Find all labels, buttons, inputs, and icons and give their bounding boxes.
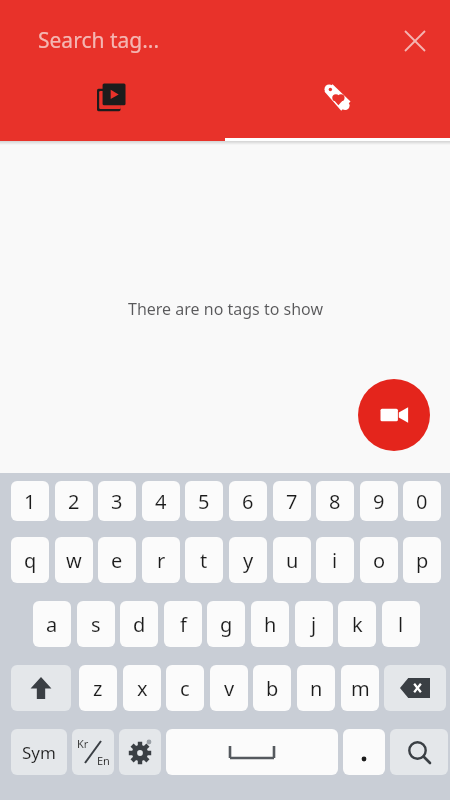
staticText: u [286, 547, 299, 574]
button[interactable]: k [338, 601, 376, 647]
button[interactable]: s [77, 601, 115, 647]
staticText: n [310, 675, 323, 702]
staticText: b [266, 675, 279, 702]
button[interactable]: 8 [316, 481, 354, 521]
button[interactable]: y [229, 537, 267, 583]
staticText: h [264, 611, 277, 638]
staticText: 0 [416, 488, 428, 515]
button[interactable]: z [79, 665, 117, 711]
button[interactable]: 1 [11, 481, 49, 521]
button[interactable]: f [164, 601, 202, 647]
button[interactable]: 7 [273, 481, 311, 521]
button[interactable]: a [33, 601, 71, 647]
button[interactable]: Backspace [384, 665, 446, 711]
button[interactable]: Videos tab [0, 66, 225, 141]
staticText: Sym [22, 741, 56, 764]
staticText: 6 [242, 488, 254, 515]
button[interactable]: g [207, 601, 245, 647]
button[interactable]: 3 [98, 481, 136, 521]
staticText: There are no tags to show [128, 298, 323, 320]
button[interactable]: o [360, 537, 398, 583]
button[interactable]: 2 [55, 481, 93, 521]
button[interactable]: q [11, 537, 49, 583]
button[interactable]: 9 [360, 481, 398, 521]
button[interactable]: Settings [119, 729, 161, 775]
staticText: l [398, 611, 404, 638]
staticText: 5 [198, 488, 210, 515]
staticText: 8 [329, 488, 341, 515]
staticText: 9 [373, 488, 385, 515]
staticText: x [137, 675, 148, 702]
staticText: y [243, 547, 254, 574]
staticText: t [200, 547, 208, 574]
staticText: a [46, 611, 58, 638]
button[interactable]: d [120, 601, 158, 647]
staticText: m [351, 675, 370, 702]
button[interactable]: Space [166, 729, 338, 775]
staticText: g [220, 611, 233, 638]
button[interactable]: b [253, 665, 291, 711]
staticText: i [332, 547, 338, 574]
button[interactable]: u [273, 537, 311, 583]
staticText: Kr [77, 736, 89, 751]
staticText: 3 [111, 488, 123, 515]
button[interactable]: n [297, 665, 335, 711]
staticText: v [224, 675, 235, 702]
staticText: q [24, 547, 37, 574]
button[interactable]: 4 [142, 481, 180, 521]
button[interactable]: 6 [229, 481, 267, 521]
button[interactable]: i [316, 537, 354, 583]
button[interactable]: Tags tab [225, 66, 450, 141]
staticText: 4 [155, 488, 167, 515]
button[interactable]: e [98, 537, 136, 583]
staticText: 7 [286, 488, 298, 515]
button[interactable]: v [210, 665, 248, 711]
staticText: f [180, 611, 187, 638]
staticText: k [352, 611, 363, 638]
staticText: z [93, 675, 103, 702]
button[interactable]: Close search [393, 19, 437, 63]
staticText: e [111, 547, 123, 574]
button[interactable]: t [185, 537, 223, 583]
button[interactable]: 5 [185, 481, 223, 521]
button[interactable]: 0 [403, 481, 441, 521]
button[interactable]: m [341, 665, 379, 711]
button[interactable]: Sym [11, 729, 67, 775]
staticText: Search tag... [38, 26, 160, 55]
button[interactable]: h [251, 601, 289, 647]
button[interactable]: Period [343, 729, 385, 775]
button[interactable]: p [403, 537, 441, 583]
staticText: c [180, 675, 190, 702]
staticText: j [311, 611, 317, 638]
button[interactable]: Shift [11, 665, 71, 711]
staticText: 2 [68, 488, 80, 515]
button[interactable]: j [295, 601, 333, 647]
button[interactable]: Language [72, 729, 114, 775]
staticText: r [157, 547, 166, 574]
staticText: w [66, 547, 82, 574]
staticText: 1 [24, 488, 36, 515]
button[interactable]: r [142, 537, 180, 583]
button[interactable]: c [166, 665, 204, 711]
button[interactable]: w [55, 537, 93, 583]
staticText: En [97, 753, 110, 768]
button[interactable]: x [123, 665, 161, 711]
button[interactable]: l [382, 601, 420, 647]
staticText: s [91, 611, 101, 638]
staticText: o [373, 547, 386, 574]
button[interactable]: Record video [358, 379, 430, 451]
button[interactable]: Search [390, 729, 448, 775]
staticText: d [133, 611, 146, 638]
staticText: p [416, 547, 429, 574]
